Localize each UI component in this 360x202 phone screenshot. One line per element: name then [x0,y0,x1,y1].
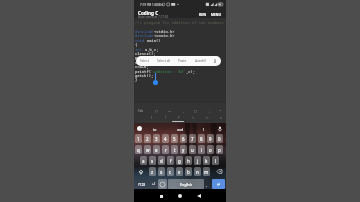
button[interactable]: — [167,109,173,113]
staticText: #include [135,33,154,38]
staticText: 4 [164,136,167,142]
button[interactable]: = [219,116,223,120]
staticText: Coding C [138,10,159,16]
button[interactable]: d [158,156,165,165]
staticText: □ [194,109,198,113]
button[interactable]: \ [150,116,154,120]
button[interactable]: w [144,145,151,154]
button[interactable]: Tab [137,109,145,113]
button[interactable]: 6 [180,134,187,143]
staticText: ?123 [138,182,146,187]
staticText: Paste [178,59,187,63]
button[interactable]: i [198,145,205,154]
staticText: d [160,158,163,164]
button[interactable]: e [153,145,160,154]
staticText: Select all [157,59,171,63]
button[interactable]: 0 [216,134,223,143]
button[interactable]: q [135,145,142,154]
staticText: RUN [199,13,207,17]
button[interactable]: g [176,156,183,165]
button[interactable]: y [180,145,187,154]
button[interactable]: 2 [144,134,151,143]
button[interactable]: Autofill [194,57,207,65]
button[interactable]: ○ [154,109,159,113]
button[interactable]: Backspace [213,167,226,176]
button[interactable]: v [176,167,183,176]
button[interactable]: p [216,145,223,154]
button[interactable]: o [207,145,214,154]
button[interactable]: Home [177,193,183,199]
staticText: x [160,169,163,175]
staticText: int [135,47,145,52]
staticText: a [142,158,145,164]
button[interactable]: f [167,156,174,165]
button[interactable]: l [212,156,219,165]
staticText: Autofill [195,59,206,63]
button[interactable]: < [191,116,195,120]
staticText: Auto saved at 7:17:30 [138,15,169,19]
button[interactable]: Shift [134,167,147,176]
button[interactable]: 4 [162,134,169,143]
button[interactable]: 7 [189,134,196,143]
staticText: 1 [137,136,140,142]
button[interactable]: , [182,109,185,113]
button[interactable]: z [149,167,156,176]
staticText: ); [195,55,200,60]
staticText: ↵ [217,182,221,187]
button[interactable]: 8 [198,134,205,143]
button[interactable]: m [203,167,210,176]
button[interactable]: ; [208,109,211,113]
staticText: — [168,109,172,113]
button[interactable]: 5 [171,134,178,143]
button[interactable]: c [167,167,174,176]
button[interactable]: Recents [158,193,164,199]
button[interactable]: Emoji [158,179,167,189]
staticText: \ [151,116,153,120]
staticText: ,&a,&b); [163,60,182,65]
staticText: f [170,158,172,164]
button[interactable]: Select all [156,57,172,65]
button[interactable]: Back [196,193,202,199]
button[interactable]: b [185,167,192,176]
button[interactable]: RUN [198,12,208,18]
button[interactable]: > [205,116,209,120]
button[interactable]: MENU [210,12,222,18]
button[interactable]: x [158,167,165,176]
button[interactable]: ? [177,116,181,120]
button[interactable]: Paste [177,57,188,65]
button[interactable]: Google [137,126,142,131]
button[interactable]: Enter [212,179,225,189]
button[interactable]: ! [164,116,167,120]
button[interactable]: • [219,109,223,113]
staticText: "addition : %d" [151,69,186,74]
staticText: w [146,147,150,153]
staticText: u [191,147,194,153]
button[interactable]: More options [212,58,218,64]
staticText: 5 [173,136,176,142]
button[interactable]: English [168,179,204,189]
button[interactable]: n [194,167,201,176]
staticText: z [151,169,154,175]
staticText: :-) [152,182,155,186]
staticText: < [192,116,194,120]
button[interactable]: r [162,145,169,154]
button[interactable]: j [194,156,201,165]
button[interactable]: h [185,156,192,165]
button[interactable]: Voice input [217,126,223,132]
button[interactable]: 9 [207,134,214,143]
button[interactable]: Select [139,57,150,65]
staticText: printf( [135,55,151,60]
staticText: . [206,183,208,188]
button[interactable]: t [171,145,178,154]
staticText: "enter two numbers" [151,55,195,60]
button[interactable]: . [137,116,140,120]
button[interactable]: a [140,156,147,165]
button[interactable]: s [149,156,156,165]
button[interactable]: 1 [135,134,142,143]
staticText: g [178,158,181,164]
button[interactable]: u [189,145,196,154]
button[interactable]: 3 [153,134,160,143]
button[interactable]: Emoji symbols [149,179,157,189]
button[interactable]: k [203,156,210,165]
button[interactable]: □ [193,109,199,113]
